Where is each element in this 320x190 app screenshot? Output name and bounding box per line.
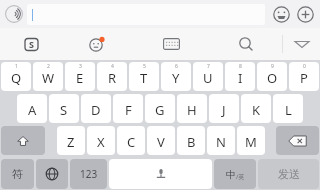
button[interactable]: Stickers — [62, 28, 132, 60]
staticText: 123 — [80, 167, 98, 181]
button[interactable]: 7 — [193, 62, 223, 91]
button[interactable]: D — [81, 94, 111, 123]
staticText: Y — [172, 69, 180, 87]
button[interactable]: 0 — [289, 62, 319, 91]
staticText: 中 — [226, 168, 236, 181]
button[interactable]: Add — [293, 2, 317, 26]
button[interactable]: M — [237, 126, 265, 155]
staticText: M — [245, 133, 257, 151]
button[interactable]: X — [87, 126, 115, 155]
button[interactable]: K — [241, 94, 271, 123]
staticText: V — [157, 133, 165, 151]
button[interactable]: Z — [57, 126, 85, 155]
staticText: S — [60, 101, 68, 119]
button[interactable]: 8 — [225, 62, 255, 91]
staticText: 8 — [239, 63, 242, 70]
staticText: F — [125, 101, 132, 119]
staticText: /英 — [236, 173, 245, 181]
button[interactable]: S — [49, 94, 79, 123]
button[interactable]: V — [147, 126, 175, 155]
staticText: W — [42, 69, 55, 87]
staticText: 发送 — [278, 167, 300, 181]
button[interactable]: Sogou — [0, 28, 62, 60]
staticText: U — [203, 69, 213, 87]
button[interactable]: 2 — [33, 62, 63, 91]
button[interactable]: Emoji — [269, 2, 293, 26]
staticText: P — [300, 69, 308, 87]
button[interactable]: A — [17, 94, 47, 123]
staticText: D — [91, 101, 101, 119]
button[interactable]: G — [145, 94, 175, 123]
button[interactable]: Search — [210, 28, 282, 60]
button[interactable]: Switch language — [36, 159, 68, 189]
staticText: O — [267, 69, 278, 87]
staticText: C — [127, 133, 136, 151]
button[interactable]: 6 — [161, 62, 191, 91]
staticText: 9 — [271, 63, 274, 70]
button[interactable]: F — [113, 94, 143, 123]
staticText: Q — [11, 69, 22, 87]
staticText: S — [29, 38, 34, 50]
staticText: T — [140, 69, 148, 87]
staticText: H — [187, 101, 197, 119]
staticText: N — [216, 133, 226, 151]
button[interactable]: B — [177, 126, 205, 155]
staticText: I — [238, 69, 243, 87]
button[interactable]: H — [177, 94, 207, 123]
button[interactable]: Shift — [1, 126, 45, 155]
button[interactable]: 9 — [257, 62, 287, 91]
staticText: K — [252, 101, 261, 119]
staticText: 5 — [143, 63, 146, 70]
staticText: E — [76, 69, 84, 87]
staticText: 0 — [303, 63, 306, 70]
button[interactable]: L — [273, 94, 303, 123]
button[interactable]: N — [207, 126, 235, 155]
staticText: L — [285, 101, 292, 119]
staticText: 6 — [175, 63, 178, 70]
button[interactable]: Hide keyboard — [283, 28, 320, 60]
staticText: Z — [67, 133, 75, 151]
staticText: 3 — [79, 63, 82, 70]
staticText: X — [97, 133, 105, 151]
button[interactable]: 4 — [97, 62, 127, 91]
staticText: 4 — [111, 63, 114, 70]
button[interactable]: Backspace — [276, 126, 319, 155]
button[interactable]: 发送 — [258, 159, 319, 189]
button[interactable]: J — [209, 94, 239, 123]
staticText: 1 — [15, 63, 18, 70]
button[interactable]: 5 — [129, 62, 159, 91]
button[interactable]: Space — [109, 159, 212, 189]
button[interactable] — [27, 4, 265, 25]
staticText: 符 — [12, 167, 23, 181]
button[interactable]: 1 — [1, 62, 31, 91]
button[interactable]: 符 — [1, 159, 34, 189]
staticText: G — [155, 101, 165, 119]
button[interactable]: 123 — [70, 159, 107, 189]
staticText: 7 — [207, 63, 210, 70]
button[interactable]: 中 — [214, 159, 256, 189]
staticText: J — [222, 101, 226, 119]
staticText: A — [28, 101, 37, 119]
staticText: 2 — [47, 63, 50, 70]
button[interactable]: C — [117, 126, 145, 155]
button[interactable]: Voice input — [3, 3, 25, 25]
staticText: B — [187, 133, 196, 151]
button[interactable]: Keyboard layout — [132, 28, 210, 60]
button[interactable]: 3 — [65, 62, 95, 91]
staticText: R — [108, 69, 117, 87]
